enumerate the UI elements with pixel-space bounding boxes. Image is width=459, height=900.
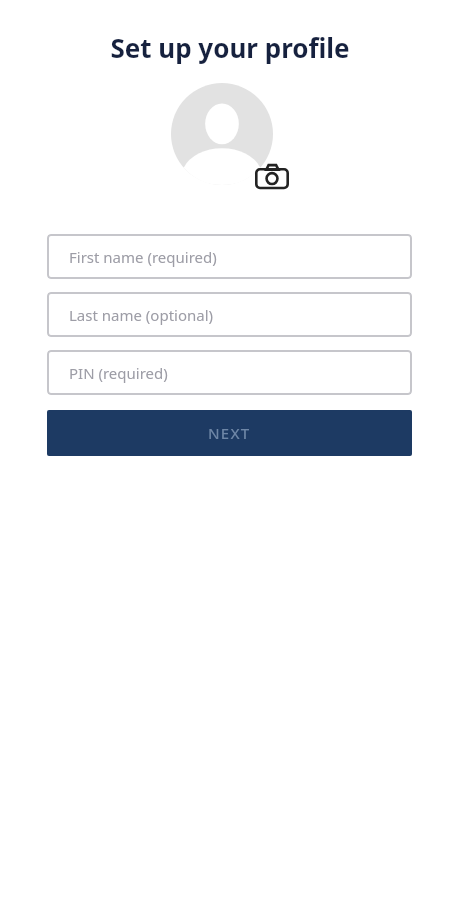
staticText: NEXT	[208, 423, 251, 443]
staticText: Set up your profile	[110, 30, 350, 65]
button[interactable]: Last name (optional)	[47, 292, 412, 337]
button[interactable]: First name (required)	[47, 234, 412, 279]
button[interactable]: Change profile photo	[171, 83, 289, 189]
button[interactable]: PIN (required)	[47, 350, 412, 395]
button[interactable]: NEXT	[47, 410, 412, 456]
staticText: First name (required)	[69, 247, 217, 267]
staticText: PIN (required)	[69, 363, 168, 383]
staticText: Last name (optional)	[69, 305, 214, 325]
